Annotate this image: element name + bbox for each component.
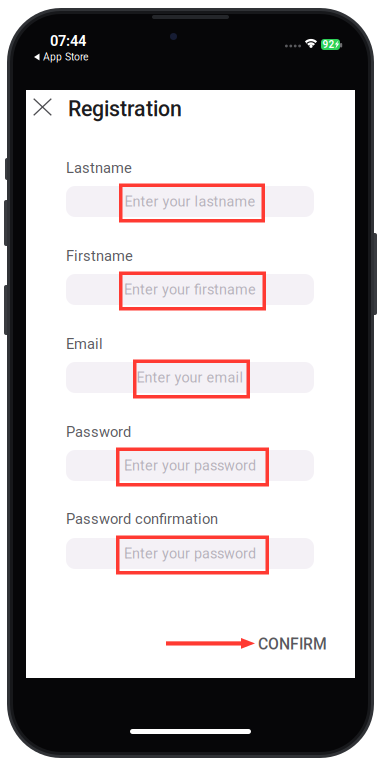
button[interactable]: Enter your lastname — [66, 186, 314, 217]
staticText: Firstname — [66, 247, 133, 265]
staticText: 07:44 — [50, 32, 86, 50]
staticText: Enter your password — [124, 457, 256, 474]
staticText: Enter your firstname — [124, 281, 256, 298]
button[interactable]: Enter your password — [66, 538, 314, 569]
staticText: Lastname — [66, 159, 132, 177]
staticText: Registration — [68, 96, 182, 121]
staticText: Enter your email — [136, 369, 243, 386]
button[interactable]: Close — [33, 98, 52, 116]
staticText: App Store — [43, 51, 89, 63]
staticText: Password — [66, 423, 131, 441]
staticText: 92 — [322, 39, 334, 50]
button[interactable]: CONFIRM — [258, 635, 327, 653]
staticText: Enter your lastname — [124, 193, 255, 210]
staticText: Enter your password — [124, 545, 256, 562]
staticText: CONFIRM — [258, 635, 327, 653]
button[interactable]: Enter your firstname — [66, 274, 314, 305]
button[interactable]: Enter your email — [66, 362, 314, 393]
staticText: Password confirmation — [66, 510, 218, 528]
button[interactable]: Enter your password — [66, 450, 314, 481]
staticText: Email — [66, 335, 103, 353]
